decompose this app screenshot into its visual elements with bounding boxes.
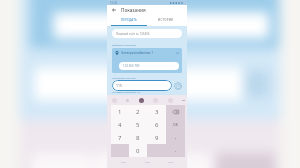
button[interactable]: 2 (129, 105, 147, 118)
button[interactable]: History (174, 82, 182, 90)
button[interactable]: ПЕРЕДАТЬ (111, 14, 147, 25)
button[interactable]: 4 (111, 118, 129, 131)
staticText: . (175, 147, 177, 154)
button[interactable]: Voice (153, 98, 158, 103)
staticText: 3 (155, 108, 159, 116)
button[interactable]: 7 (111, 131, 129, 144)
button[interactable]: Search (168, 98, 173, 103)
staticText: 0 (136, 147, 140, 155)
staticText: Последние показания: 110 (112, 91, 141, 94)
staticText: 9 (155, 134, 159, 142)
button[interactable]: Электроснабжение 1 (112, 48, 182, 73)
staticText: 7 (118, 134, 122, 142)
button[interactable]: Back (110, 6, 118, 14)
button[interactable]: Лицевой счёт № 123456 (112, 29, 182, 38)
button[interactable]: 6 (147, 118, 166, 131)
button[interactable]: Sticker (126, 99, 129, 102)
button[interactable]: 8 (129, 131, 147, 144)
staticText: Лицевой счёт № 123456 (116, 32, 150, 36)
button[interactable]: ИСТОРИЯ (147, 14, 184, 25)
button[interactable]: 3 (147, 105, 166, 118)
staticText: 8 (136, 134, 140, 142)
button[interactable]: 115 (112, 80, 172, 91)
staticText: ИСТОРИЯ (158, 18, 174, 22)
staticText: OK (173, 122, 178, 127)
staticText: 1 (118, 108, 122, 116)
staticText: Показания счётчика (112, 76, 136, 79)
staticText: 10:42 (110, 1, 118, 5)
staticText: Электроснабжение 1 (121, 51, 154, 55)
button[interactable]: 9 (147, 131, 166, 144)
button[interactable]: Emoji (139, 98, 144, 103)
staticText: 4 (118, 121, 122, 129)
button[interactable]: 0 (129, 144, 147, 157)
staticText: ПЕРЕДАТЬ (121, 18, 137, 22)
staticText: Показания (121, 7, 146, 13)
button[interactable]: Settings (112, 98, 117, 103)
staticText: 2 (136, 108, 140, 116)
button[interactable]: Backspace (166, 105, 185, 118)
staticText: Выберите показание (112, 43, 137, 46)
staticText: , (175, 134, 177, 141)
button[interactable]: 5 (129, 118, 147, 131)
staticText: 115 (116, 83, 122, 88)
button[interactable]: 1 (111, 105, 129, 118)
button[interactable]: OK (166, 118, 185, 131)
staticText: 6 (155, 121, 159, 129)
staticText: 5 (136, 121, 140, 129)
staticText: 123 456 789 (123, 64, 140, 68)
